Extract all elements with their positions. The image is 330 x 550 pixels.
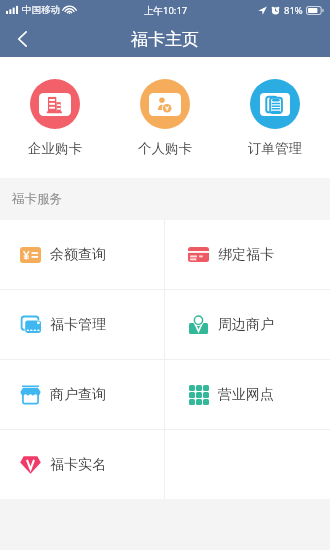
staticText: 福卡管理 — [50, 316, 106, 334]
button[interactable]: 营业网点 — [165, 360, 330, 429]
button[interactable]: 福卡管理 — [0, 290, 164, 359]
staticText: 余额查询 — [50, 246, 106, 264]
staticText: 福卡服务 — [12, 191, 62, 207]
staticText: 营业网点 — [218, 386, 274, 404]
staticText: 81% — [284, 4, 303, 17]
button[interactable]: 个人购卡 — [110, 57, 220, 178]
staticText: 上午10:17 — [144, 4, 188, 17]
staticText: 周边商户 — [218, 316, 274, 334]
staticText: 绑定福卡 — [218, 246, 274, 264]
staticText: 中国移动 — [22, 4, 60, 16]
staticText: 企业购卡 — [28, 140, 82, 157]
button[interactable]: 商户查询 — [0, 360, 164, 429]
button[interactable]: Back — [0, 20, 44, 57]
staticText: 福卡主页 — [131, 29, 199, 50]
staticText: 订单管理 — [248, 140, 302, 157]
button[interactable]: 绑定福卡 — [165, 220, 330, 289]
button[interactable]: 余额查询 — [0, 220, 164, 289]
staticText: 个人购卡 — [138, 140, 192, 157]
button[interactable]: 企业购卡 — [0, 57, 110, 178]
button[interactable]: 周边商户 — [165, 290, 330, 359]
button[interactable]: 福卡实名 — [0, 430, 164, 499]
button[interactable]: 订单管理 — [220, 57, 330, 178]
staticText: 福卡实名 — [50, 456, 106, 474]
staticText: 商户查询 — [50, 386, 106, 404]
